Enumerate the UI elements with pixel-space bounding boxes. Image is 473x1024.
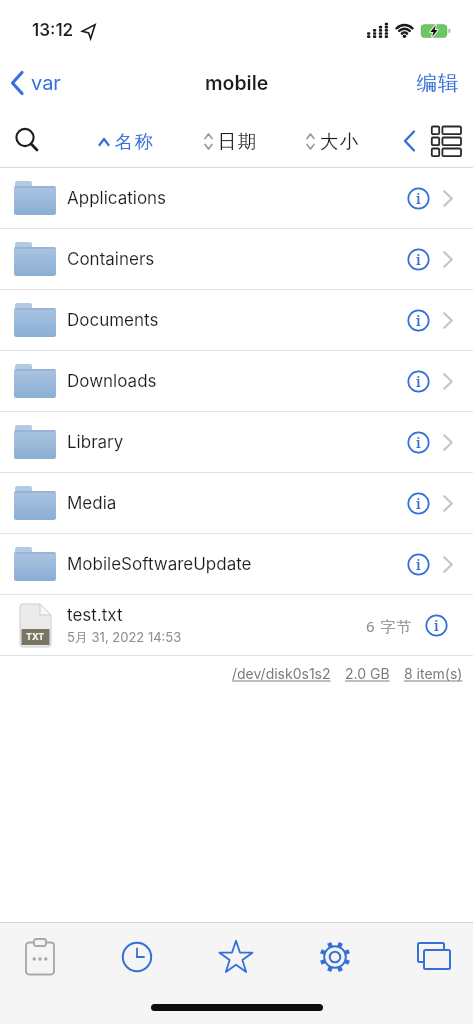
button[interactable]: Documents: [0, 290, 473, 351]
button[interactable]: [14, 127, 42, 155]
staticText: Media: [67, 493, 117, 514]
button[interactable]: i: [407, 370, 430, 393]
button[interactable]: i: [407, 309, 430, 332]
staticText: 6 字节: [366, 616, 413, 636]
button[interactable]: [399, 126, 420, 156]
staticText: i: [434, 616, 439, 635]
button[interactable]: 编辑: [416, 70, 459, 96]
button[interactable]: i: [407, 553, 430, 576]
staticText: i: [416, 555, 421, 574]
staticText: MobileSoftwareUpdate: [67, 554, 252, 575]
button[interactable]: Downloads: [0, 351, 473, 412]
button[interactable]: [313, 935, 357, 979]
staticText: Downloads: [67, 371, 157, 392]
staticText: 大小: [319, 130, 359, 153]
staticText: Containers: [67, 249, 155, 270]
staticText: Documents: [67, 310, 159, 331]
button[interactable]: 8 item(s): [404, 665, 463, 682]
button[interactable]: TXT: [0, 595, 473, 656]
button[interactable]: Containers: [0, 229, 473, 290]
staticText: mobile: [205, 71, 269, 95]
staticText: Library: [67, 432, 124, 453]
button[interactable]: 名称: [98, 130, 154, 153]
staticText: i: [416, 189, 421, 208]
button[interactable]: Applications: [0, 168, 473, 229]
button[interactable]: 大小: [306, 130, 359, 153]
button[interactable]: 2.0 GB: [345, 665, 390, 682]
staticText: test.txt: [67, 605, 123, 626]
button[interactable]: Library: [0, 412, 473, 473]
button[interactable]: i: [407, 431, 430, 454]
button[interactable]: var: [10, 71, 61, 95]
staticText: i: [416, 494, 421, 513]
staticText: i: [416, 311, 421, 330]
button[interactable]: 日期: [204, 130, 257, 153]
button[interactable]: [18, 935, 62, 979]
staticText: 日期: [217, 130, 257, 153]
button[interactable]: i: [425, 614, 448, 637]
button[interactable]: [431, 126, 462, 156]
button[interactable]: MobileSoftwareUpdate: [0, 534, 473, 595]
staticText: i: [416, 250, 421, 269]
button[interactable]: [115, 935, 159, 979]
button[interactable]: [214, 935, 258, 979]
staticText: i: [416, 433, 421, 452]
staticText: 13:12: [32, 20, 74, 41]
button[interactable]: i: [407, 248, 430, 271]
staticText: 名称: [114, 130, 154, 153]
button[interactable]: i: [407, 187, 430, 210]
staticText: Applications: [67, 188, 167, 209]
staticText: var: [31, 71, 61, 95]
button[interactable]: Media: [0, 473, 473, 534]
button[interactable]: [412, 935, 456, 979]
button[interactable]: i: [407, 492, 430, 515]
staticText: 5月 31, 2022 14:53: [67, 629, 182, 645]
staticText: TXT: [26, 631, 45, 642]
button[interactable]: /dev/disk0s1s2: [232, 665, 331, 682]
staticText: i: [416, 372, 421, 391]
